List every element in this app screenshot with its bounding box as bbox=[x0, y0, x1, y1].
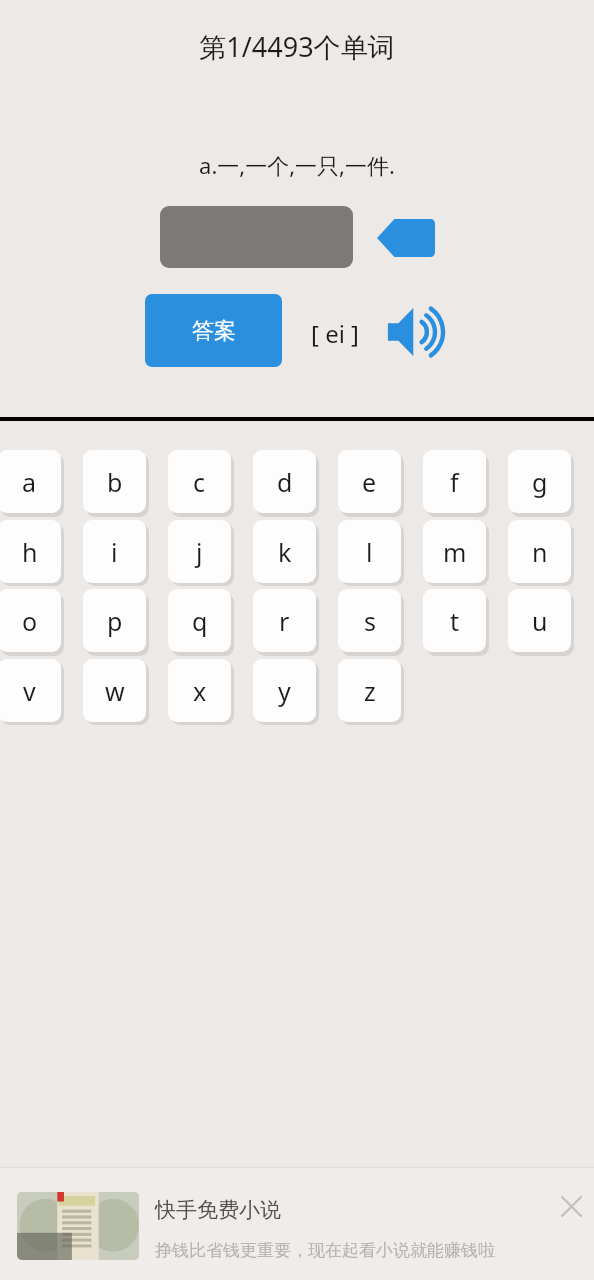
button[interactable]: m bbox=[423, 520, 486, 583]
staticText: n bbox=[532, 535, 548, 569]
staticText: j bbox=[196, 535, 203, 569]
staticText: l bbox=[366, 535, 373, 569]
staticText: 快手免费小说 bbox=[155, 1197, 281, 1223]
button[interactable]: q bbox=[168, 589, 231, 652]
staticText: g bbox=[532, 465, 548, 499]
staticText: b bbox=[107, 465, 123, 499]
button[interactable]: r bbox=[253, 589, 316, 652]
button[interactable]: p bbox=[83, 589, 146, 652]
button[interactable]: y bbox=[253, 659, 316, 722]
staticText: m bbox=[443, 535, 467, 569]
staticText: e bbox=[362, 465, 377, 499]
button[interactable]: h bbox=[0, 520, 61, 583]
button[interactable]: k bbox=[253, 520, 316, 583]
button[interactable]: i bbox=[83, 520, 146, 583]
button[interactable]: c bbox=[168, 450, 231, 513]
button[interactable]: Backspace bbox=[377, 219, 435, 257]
button[interactable]: d bbox=[253, 450, 316, 513]
button[interactable]: a bbox=[0, 450, 61, 513]
staticText: v bbox=[23, 674, 36, 708]
staticText: r bbox=[279, 604, 290, 638]
staticText: 挣钱比省钱更重要，现在起看小说就能赚钱啦 bbox=[155, 1240, 495, 1261]
button[interactable]: Play pronunciation bbox=[386, 306, 448, 358]
staticText: u bbox=[532, 604, 548, 638]
staticText: d bbox=[277, 465, 293, 499]
button[interactable]: j bbox=[168, 520, 231, 583]
button[interactable]: w bbox=[83, 659, 146, 722]
staticText: x bbox=[193, 674, 207, 708]
staticText: 第1/4493个单词 bbox=[199, 28, 395, 65]
staticText: q bbox=[192, 604, 208, 638]
button[interactable]: g bbox=[508, 450, 571, 513]
staticText: k bbox=[278, 535, 292, 569]
staticText: o bbox=[22, 604, 38, 638]
button[interactable]: x bbox=[168, 659, 231, 722]
staticText: [ ei ] bbox=[311, 317, 359, 350]
staticText: p bbox=[107, 604, 123, 638]
button[interactable]: e bbox=[338, 450, 401, 513]
button[interactable]: z bbox=[338, 659, 401, 722]
staticText: f bbox=[450, 465, 459, 499]
button[interactable]: Close ad bbox=[552, 1187, 590, 1225]
button[interactable]: 答案 bbox=[145, 294, 282, 367]
staticText: y bbox=[278, 674, 291, 708]
staticText: i bbox=[111, 535, 118, 569]
staticText: a bbox=[22, 465, 37, 499]
staticText: t bbox=[450, 604, 460, 638]
button[interactable]: t bbox=[423, 589, 486, 652]
button[interactable]: v bbox=[0, 659, 61, 722]
button[interactable]: 快手免费小说 bbox=[0, 1167, 594, 1280]
staticText: a.一,一个,一只,一件. bbox=[199, 150, 395, 180]
button[interactable]: n bbox=[508, 520, 571, 583]
staticText: c bbox=[193, 465, 206, 499]
staticText: w bbox=[105, 674, 125, 708]
staticText: z bbox=[364, 674, 376, 708]
staticText: s bbox=[364, 604, 376, 638]
button[interactable]: b bbox=[83, 450, 146, 513]
staticText: h bbox=[22, 535, 38, 569]
button[interactable]: s bbox=[338, 589, 401, 652]
button[interactable]: u bbox=[508, 589, 571, 652]
button[interactable]: o bbox=[0, 589, 61, 652]
button[interactable]: f bbox=[423, 450, 486, 513]
button[interactable]: l bbox=[338, 520, 401, 583]
button[interactable] bbox=[160, 206, 353, 268]
staticText: 答案 bbox=[192, 317, 236, 345]
